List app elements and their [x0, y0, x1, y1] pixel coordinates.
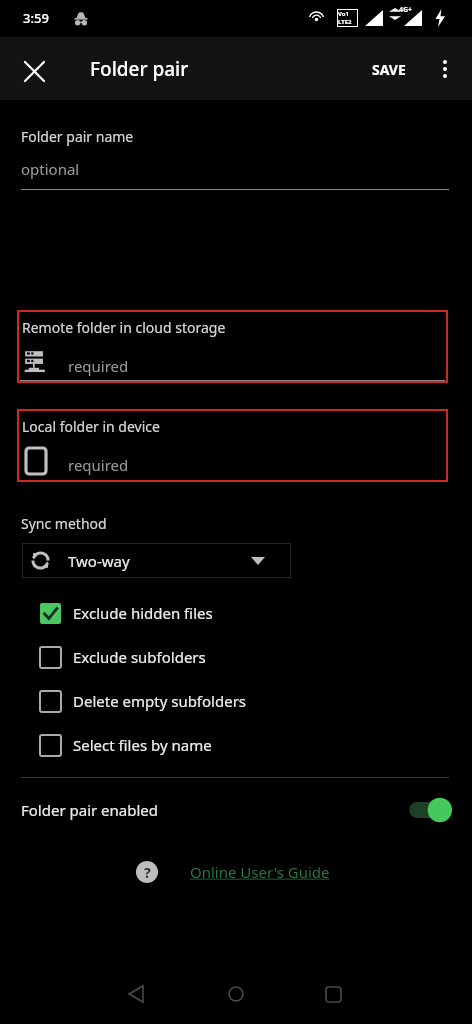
staticText: Remote folder in cloud storage — [22, 318, 226, 337]
staticText: Folder pair — [90, 56, 189, 82]
staticText: 3:59 — [23, 9, 49, 27]
staticText: required — [68, 356, 129, 376]
staticText: required — [68, 455, 129, 475]
button[interactable]: optional — [21, 155, 449, 190]
staticText: LTE2 — [338, 18, 352, 26]
staticText: Sync method — [21, 514, 107, 533]
staticText: Select files by name — [73, 735, 212, 755]
button[interactable]: More options — [425, 49, 465, 89]
button[interactable]: Delete empty subfolders — [40, 685, 360, 717]
button[interactable]: ? — [136, 857, 330, 887]
staticText: 4G+ — [399, 5, 413, 15]
button[interactable]: SAVE — [360, 49, 418, 89]
button[interactable]: Local folder in device — [17, 409, 448, 482]
staticText: Folder pair name — [21, 127, 134, 146]
button[interactable]: Back — [117, 975, 155, 1013]
button[interactable]: Folder pair enabled — [0, 790, 472, 830]
staticText: Local folder in device — [22, 417, 160, 436]
staticText: Exclude hidden files — [73, 603, 213, 623]
staticText: Folder pair enabled — [21, 800, 159, 820]
button[interactable]: Two-way — [22, 543, 291, 578]
staticText: optional — [21, 159, 80, 179]
button[interactable]: Close — [12, 49, 56, 93]
button[interactable]: Exclude hidden files — [40, 597, 360, 629]
button[interactable]: Recent apps — [314, 975, 352, 1013]
staticText: SAVE — [372, 60, 406, 79]
button[interactable]: Home — [217, 975, 255, 1013]
staticText: Delete empty subfolders — [73, 691, 247, 711]
button[interactable]: Exclude subfolders — [40, 641, 360, 673]
staticText: Vo1 — [338, 10, 349, 18]
button[interactable]: Select files by name — [40, 729, 360, 761]
staticText: Online User's Guide — [190, 862, 330, 882]
staticText: Two-way — [68, 551, 130, 571]
staticText: ? — [144, 863, 151, 882]
staticText: Exclude subfolders — [73, 647, 206, 667]
button[interactable]: Remote folder in cloud storage — [17, 310, 448, 383]
